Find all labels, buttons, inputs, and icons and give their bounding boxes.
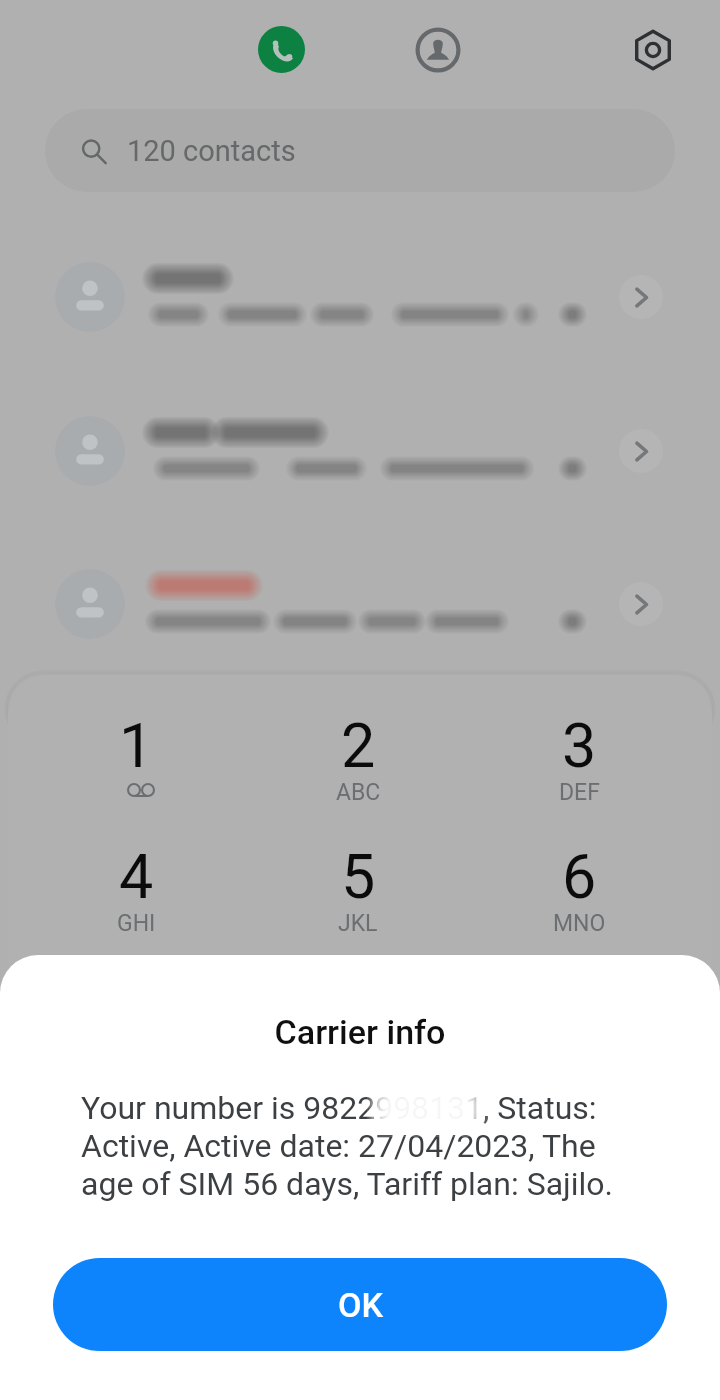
staticText: GHI: [117, 910, 156, 937]
staticText: Carrier info: [0, 1012, 720, 1052]
button[interactable]: 120 contacts: [45, 109, 675, 192]
button[interactable]: Contact details: [0, 223, 720, 371]
staticText: DEF: [559, 779, 600, 806]
staticText: MNO: [553, 910, 606, 937]
staticText: JKL: [338, 910, 378, 937]
button[interactable]: Contact details: [0, 377, 720, 525]
button[interactable]: Dialer: [258, 26, 305, 73]
button[interactable]: Contact details: [619, 275, 663, 319]
button[interactable]: 5: [298, 841, 418, 949]
staticText: 2: [341, 710, 376, 781]
button[interactable]: 3: [519, 710, 639, 818]
button[interactable]: Contact details: [619, 582, 663, 626]
staticText: OK: [338, 1285, 383, 1325]
staticText: 1: [119, 710, 154, 781]
button[interactable]: Contact details: [619, 429, 663, 473]
button[interactable]: Contact details: [0, 530, 720, 678]
button[interactable]: OK: [53, 1258, 667, 1351]
button[interactable]: 6: [519, 841, 639, 949]
button[interactable]: Contacts: [410, 22, 466, 78]
staticText: 3: [562, 710, 597, 781]
staticText: 4: [119, 841, 154, 912]
button[interactable]: 2: [298, 710, 418, 818]
staticText: Your number is 9822998131, Status: Activ…: [81, 1089, 641, 1203]
staticText: 5: [341, 841, 376, 912]
staticText: ABC: [336, 779, 381, 806]
button[interactable]: Settings: [625, 22, 681, 78]
button[interactable]: 4: [76, 841, 196, 949]
button[interactable]: 1: [76, 710, 196, 818]
staticText: 120 contacts: [127, 134, 296, 168]
staticText: 6: [562, 841, 597, 912]
